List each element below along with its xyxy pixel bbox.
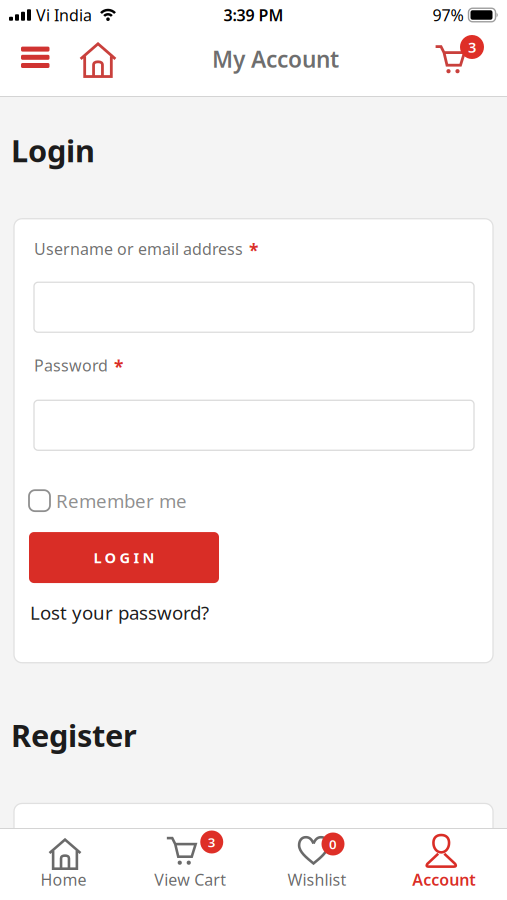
staticText: Vi India (36, 4, 92, 26)
button[interactable]: Home (0, 829, 127, 900)
staticText: Remember me (56, 488, 187, 513)
button[interactable]: Account (380, 829, 507, 900)
staticText: My Account (212, 44, 339, 74)
staticText: Login (11, 130, 95, 171)
staticText: 3:39 PM (223, 4, 283, 26)
staticText: 3 (468, 37, 476, 57)
staticText: 97% (432, 4, 463, 26)
button[interactable]: View Cart (435, 30, 507, 96)
button[interactable]: 3 (127, 829, 254, 900)
staticText: * (114, 355, 123, 378)
button[interactable]: Remember me (29, 488, 187, 513)
button[interactable]: Home (67, 30, 128, 96)
button[interactable]: Lost your password? (30, 600, 209, 625)
staticText: Wishlist (287, 869, 346, 890)
staticText: 3 (208, 833, 216, 851)
staticText: Username or email address (34, 238, 243, 259)
staticText: Password (34, 355, 108, 376)
button[interactable]: Username or email address (34, 282, 474, 332)
staticText: 0 (329, 835, 337, 853)
staticText: View Cart (154, 869, 226, 890)
staticText: Account (412, 869, 475, 890)
staticText: Lost your password? (30, 600, 209, 625)
button[interactable]: LOGIN (29, 532, 219, 583)
button[interactable]: Menu (0, 30, 67, 96)
staticText: Register (11, 715, 137, 755)
button[interactable]: Password (34, 400, 474, 450)
button[interactable]: 0 (253, 829, 380, 900)
staticText: LOGIN (93, 548, 154, 567)
staticText: * (249, 239, 258, 262)
staticText: Home (40, 869, 86, 890)
